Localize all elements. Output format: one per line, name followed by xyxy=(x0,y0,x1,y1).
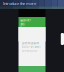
staticText: Search xyxy=(20,19,24,29)
staticText: consectetur xyxy=(21,49,37,52)
button[interactable]: Discover xyxy=(20,18,31,22)
staticText: dolor sit amet xyxy=(21,45,40,49)
button[interactable]: Introduce the more xyxy=(3,1,36,6)
button[interactable] xyxy=(18,66,45,72)
button[interactable]: Search xyxy=(20,23,25,26)
staticText: Introduce the more xyxy=(3,1,36,6)
staticText: Lorem ipsum xyxy=(21,41,38,45)
staticText: Discover xyxy=(20,18,31,22)
